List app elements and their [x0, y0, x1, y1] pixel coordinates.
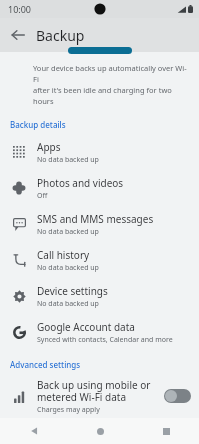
button[interactable]: Device settings	[0, 278, 199, 314]
button[interactable]: Back up using mobile or metered Wi-Fi da…	[0, 374, 199, 418]
staticText: Call history	[37, 248, 90, 262]
button[interactable]: Apps	[0, 134, 199, 170]
staticText: Synced with contacts, Calendar and more	[37, 335, 173, 345]
staticText: SMS and MMS messages	[37, 212, 154, 226]
staticText: Off	[37, 191, 48, 201]
button[interactable]: Recents	[133, 418, 199, 444]
staticText: No data backed up	[37, 155, 99, 165]
button[interactable]: Back up using mobile or metered Wi-Fi da…	[164, 389, 191, 403]
staticText: Device settings	[37, 284, 108, 298]
staticText: No data backed up	[37, 299, 99, 309]
button[interactable]: Google Account data	[0, 314, 199, 350]
button[interactable]: Photos and videos	[0, 170, 199, 206]
staticText: Google Account data	[37, 320, 135, 334]
staticText: Photos and videos	[37, 176, 124, 190]
button[interactable]	[68, 47, 132, 54]
staticText: Back up using mobile or metered Wi-Fi da…	[37, 378, 151, 404]
staticText: No data backed up	[37, 263, 99, 273]
staticText: Apps	[37, 140, 61, 154]
button[interactable]: Call history	[0, 242, 199, 278]
button[interactable]: SMS and MMS messages	[0, 206, 199, 242]
staticText: Your device backs up automatically over …	[33, 63, 191, 106]
staticText: Charges may apply	[37, 405, 100, 415]
staticText: Backup	[36, 26, 85, 45]
staticText: No data backed up	[37, 227, 99, 237]
staticText: Backup details	[10, 119, 66, 130]
staticText: 10:00	[8, 3, 32, 15]
button[interactable]: Home	[67, 418, 133, 444]
staticText: Advanced settings	[10, 359, 81, 370]
button[interactable]: Back	[0, 418, 67, 444]
button[interactable]: Back	[4, 21, 32, 49]
